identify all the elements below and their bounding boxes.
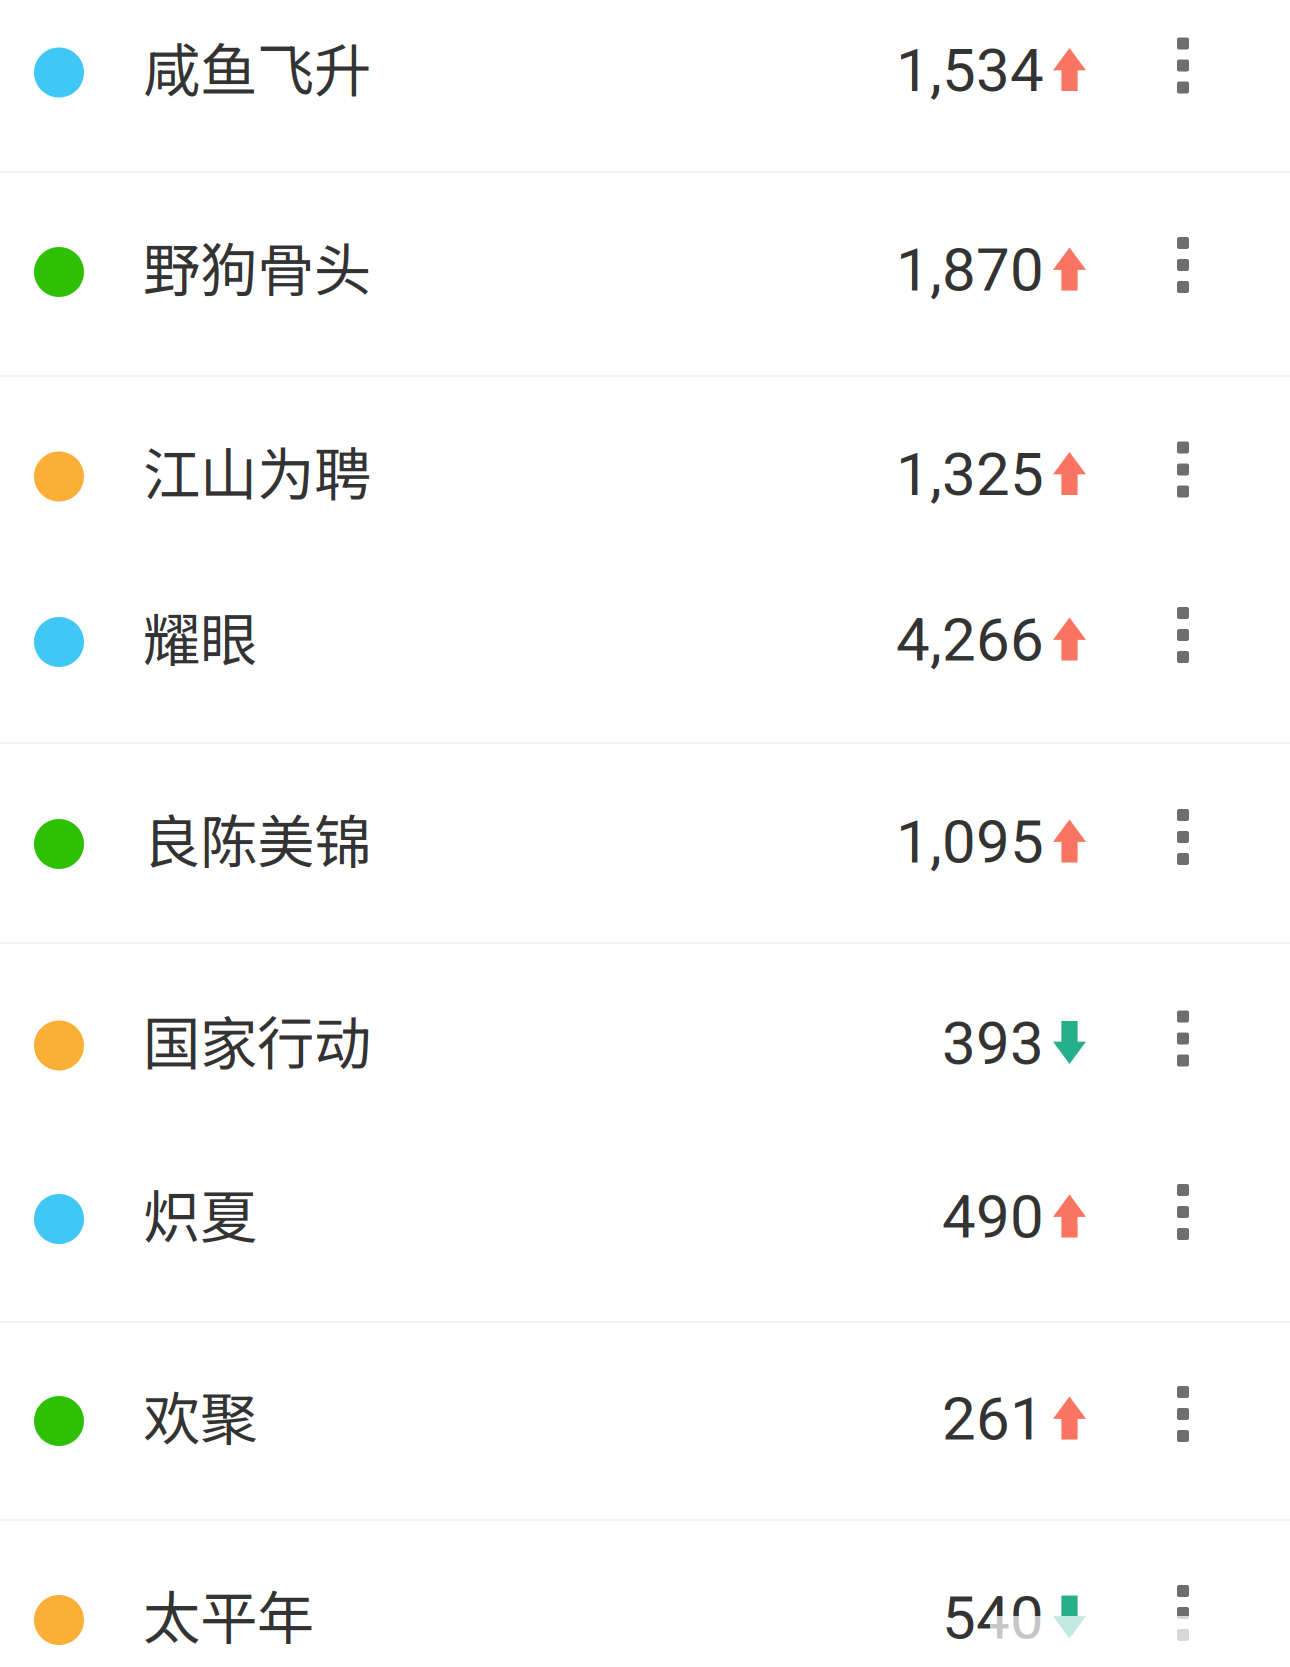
staticText: 咸鱼飞升 <box>143 25 371 108</box>
button[interactable]: More options for 耀眼 <box>1086 545 1290 727</box>
staticText: 炽夏 <box>143 1171 257 1254</box>
staticText: 江山为聘 <box>143 429 371 512</box>
staticText: 国家行动 <box>143 998 371 1081</box>
button[interactable]: 良陈美锦 <box>0 739 1086 937</box>
staticText: 490 <box>942 1182 1044 1252</box>
button[interactable]: More options for 野狗骨头 <box>1086 165 1290 367</box>
button[interactable]: 江山为聘 <box>0 379 1086 562</box>
staticText: 4,266 <box>896 605 1044 675</box>
staticText: 良陈美锦 <box>143 796 371 879</box>
staticText: 野狗骨头 <box>143 224 371 307</box>
button[interactable]: More options for 太平年 <box>1086 1541 1290 1667</box>
button[interactable]: More options for 国家行动 <box>1086 945 1290 1134</box>
button[interactable]: More options for 良陈美锦 <box>1086 739 1290 937</box>
staticText: 261 <box>942 1384 1044 1454</box>
button[interactable]: More options for 欢聚 <box>1086 1317 1290 1513</box>
staticText: 欢聚 <box>143 1373 257 1456</box>
staticText: 耀眼 <box>143 594 257 677</box>
button[interactable]: 国家行动 <box>0 945 1086 1134</box>
button[interactable]: 欢聚 <box>0 1317 1086 1513</box>
button[interactable]: 咸鱼飞升 <box>0 0 1086 152</box>
button[interactable]: 炽夏 <box>0 1119 1086 1307</box>
button[interactable]: More options for 江山为聘 <box>1086 379 1290 562</box>
button[interactable]: 太平年 <box>0 1541 1086 1667</box>
staticText: 1,870 <box>896 235 1044 305</box>
button[interactable]: 耀眼 <box>0 545 1086 727</box>
staticText: 540 <box>942 1583 1044 1653</box>
staticText: 1,534 <box>896 35 1044 106</box>
button[interactable]: 野狗骨头 <box>0 165 1086 367</box>
button[interactable]: More options for 咸鱼飞升 <box>1086 0 1290 152</box>
staticText: 1,095 <box>896 807 1044 877</box>
staticText: 太平年 <box>143 1572 314 1655</box>
staticText: 1,325 <box>896 439 1044 510</box>
staticText: 393 <box>942 1008 1044 1079</box>
button[interactable]: More options for 炽夏 <box>1086 1119 1290 1307</box>
